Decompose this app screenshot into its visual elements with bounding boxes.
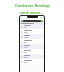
staticText: and more... (20, 10, 44, 16)
button[interactable] (20, 24, 44, 29)
button[interactable] (20, 54, 44, 59)
button[interactable] (20, 39, 44, 44)
button[interactable] (20, 44, 44, 49)
button[interactable]: Add (41, 20, 43, 22)
button[interactable] (20, 49, 44, 54)
button[interactable] (20, 29, 44, 34)
staticText: Contacts Backup (15, 3, 50, 9)
button[interactable] (20, 22, 44, 24)
button[interactable] (20, 34, 44, 39)
button[interactable] (20, 59, 44, 64)
button[interactable]: Menu (21, 20, 23, 22)
